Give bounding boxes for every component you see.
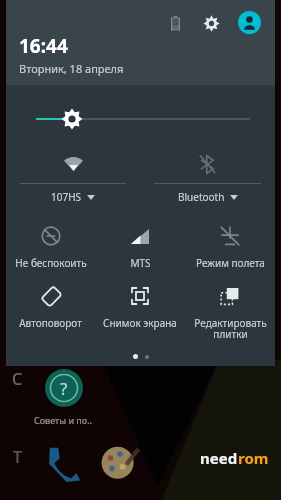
- button[interactable]: 107HS: [20, 151, 126, 204]
- staticText: T: [13, 446, 22, 468]
- staticText: Снимок экрана: [103, 316, 177, 330]
- button[interactable]: Советы и поддержка: [45, 369, 83, 407]
- staticText: Не беспокоить: [15, 256, 87, 270]
- staticText: 16:44: [19, 33, 68, 59]
- button[interactable]: MTS: [99, 223, 181, 270]
- button[interactable]: Темы: [100, 442, 140, 482]
- staticText: 107HS: [51, 190, 82, 204]
- staticText: Автоповорот: [19, 316, 82, 330]
- button[interactable]: Снимок экрана: [99, 283, 181, 330]
- staticText: Редактировать плитки: [194, 316, 267, 341]
- button[interactable]: Bluetooth: [154, 151, 261, 204]
- staticText: MTS: [130, 256, 151, 270]
- staticText: Bluetooth: [178, 190, 225, 204]
- button[interactable]: Не беспокоить: [10, 223, 91, 270]
- staticText: Вторник, 18 апреля: [19, 61, 124, 76]
- staticText: Режим полета: [196, 256, 265, 270]
- button[interactable]: Телефон: [43, 444, 81, 482]
- button[interactable]: Автоповорот: [10, 283, 91, 330]
- staticText: Советы и по..: [34, 414, 92, 426]
- other: Battery: [166, 14, 184, 32]
- button[interactable]: Settings: [200, 12, 222, 34]
- button[interactable]: Режим полета: [189, 223, 271, 270]
- button[interactable]: Редактировать плитки: [189, 283, 271, 341]
- staticText: rom: [238, 448, 269, 468]
- staticText: C: [12, 368, 23, 390]
- button[interactable]: Brightness: [6, 106, 275, 132]
- staticText: ?: [60, 377, 68, 400]
- button[interactable]: User profile: [238, 11, 261, 34]
- staticText: need: [200, 448, 238, 468]
